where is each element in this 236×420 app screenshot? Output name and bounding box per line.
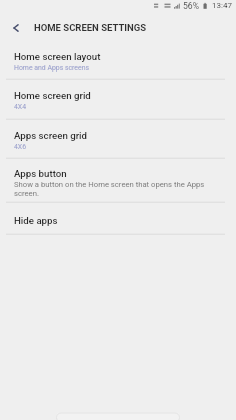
staticText: 4X6 <box>14 143 27 151</box>
button[interactable]: Apps screen grid <box>0 119 236 158</box>
staticText: 56% <box>183 1 199 11</box>
staticText: Hide apps <box>14 215 58 226</box>
button[interactable]: Home screen grid <box>0 79 236 118</box>
staticText: Home screen layout <box>14 51 101 62</box>
button[interactable]: Home screen layout <box>0 40 236 79</box>
staticText: Home and Apps screens <box>14 64 90 72</box>
button[interactable]: Apps button <box>0 158 236 202</box>
staticText: Apps screen grid <box>14 130 88 141</box>
staticText: HOME SCREEN SETTINGS <box>34 22 147 33</box>
staticText: 13:47 <box>212 1 232 10</box>
staticText: Show a button on the Home screen that op… <box>14 180 205 198</box>
button[interactable]: Hide apps <box>0 202 236 234</box>
button[interactable]: Back <box>6 18 26 38</box>
staticText: 4X4 <box>14 103 27 111</box>
staticText: Home screen grid <box>14 90 91 101</box>
staticText: Apps button <box>14 168 67 179</box>
